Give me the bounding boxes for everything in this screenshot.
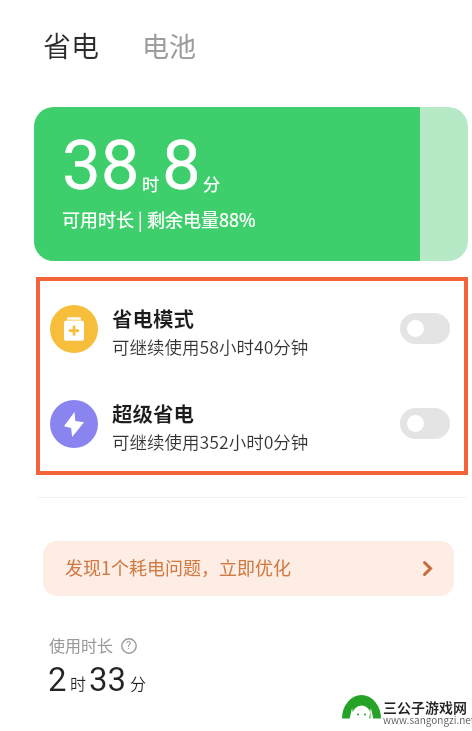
staticText: ? [126,639,132,652]
staticText: 发现1个耗电问题，立即优化 [65,554,291,580]
button[interactable]: 省电 [43,25,100,66]
staticText: 可继续使用58小时40分钟 [112,334,309,359]
staticText: 使用时长 [49,633,114,656]
staticText: 三公子游戏网 [383,697,467,717]
staticText: 分 [130,671,147,694]
other: Help [121,638,137,654]
staticText: 8 [162,125,201,206]
staticText: 电池 [142,26,196,65]
staticText: 可继续使用352小时0分钟 [112,429,309,454]
button[interactable]: 发现1个耗电问题，立即优化 [43,541,454,596]
button[interactable]: 省电模式 [40,281,464,376]
staticText: www.sangongzi.net [383,712,472,726]
staticText: 省电模式 [112,303,194,333]
staticText: 38 [62,125,140,206]
staticText: 时 [142,171,159,196]
staticText: 分 [203,171,220,196]
button[interactable]: 电池 [142,26,196,66]
staticText: 2 [48,660,67,699]
staticText: 省电 [43,25,100,66]
staticText: 时 [70,671,87,694]
staticText: 33 [89,660,127,699]
button[interactable]: 38 [34,107,468,261]
button[interactable]: 超级省电 [400,408,450,439]
staticText: 超级省电 [112,398,194,428]
staticText: 可用时长 | 剩余电量88% [62,206,256,232]
button[interactable]: 超级省电 [40,376,464,471]
button[interactable]: 省电模式 [400,313,450,344]
